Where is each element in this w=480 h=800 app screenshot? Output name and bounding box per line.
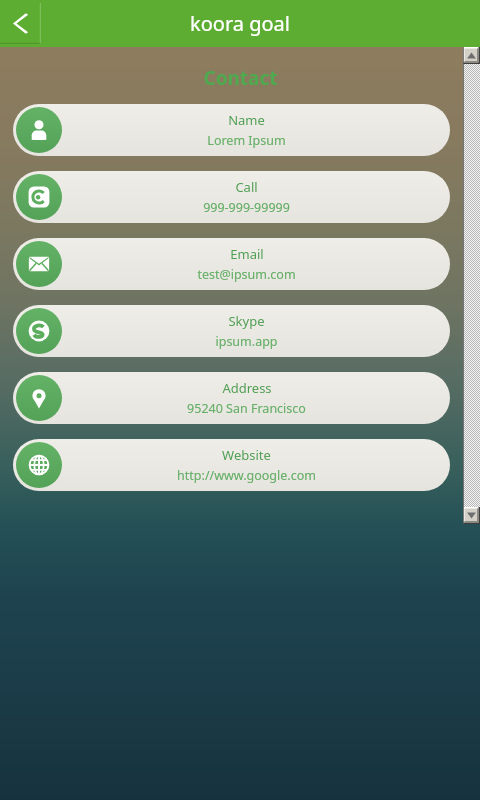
button[interactable]: Skype xyxy=(0,305,480,357)
button[interactable]: Call xyxy=(0,171,480,223)
staticText: test@ipsum.com xyxy=(197,266,296,283)
staticText: koora goal xyxy=(190,10,290,37)
staticText: http://www.google.com xyxy=(177,467,316,484)
staticText: Call xyxy=(235,178,258,196)
button[interactable]: Scroll bar xyxy=(463,47,480,524)
button[interactable]: Email xyxy=(16,241,62,287)
button[interactable]: Back xyxy=(0,0,41,47)
staticText: Email xyxy=(230,245,264,263)
staticText: Website xyxy=(222,446,271,464)
button[interactable]: Skype xyxy=(16,308,62,354)
button[interactable]: Website xyxy=(0,439,480,491)
staticText: Lorem Ipsum xyxy=(207,132,286,149)
staticText: Contact xyxy=(203,65,278,91)
button[interactable]: Address xyxy=(16,375,62,421)
staticText: Name xyxy=(228,111,265,129)
button[interactable]: Call xyxy=(16,174,62,220)
staticText: 999-999-99999 xyxy=(203,199,290,216)
button[interactable]: Website xyxy=(16,442,62,488)
button[interactable]: Email xyxy=(0,238,480,290)
button[interactable]: Name xyxy=(0,104,480,156)
staticText: Address xyxy=(222,379,272,397)
staticText: 95240 San Francisco xyxy=(187,400,306,417)
staticText: ipsum.app xyxy=(215,333,278,350)
staticText: Skype xyxy=(228,312,265,330)
button[interactable]: Address xyxy=(0,372,480,424)
button[interactable]: Name xyxy=(16,107,62,153)
